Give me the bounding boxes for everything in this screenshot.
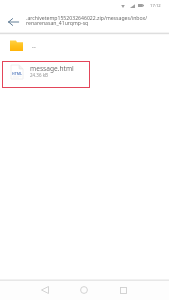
button[interactable]: HTML — [0, 58, 169, 90]
button[interactable]: Recent apps — [113, 280, 133, 300]
staticText: 17:12 — [150, 3, 161, 8]
staticText: .. — [32, 41, 36, 51]
staticText: HTML — [12, 71, 22, 76]
button[interactable]: Home — [74, 280, 94, 300]
button[interactable]: Back — [35, 280, 55, 300]
staticText: renarenasan_41urqmp-sq — [26, 19, 89, 26]
staticText: message.html — [30, 64, 74, 73]
button[interactable]: .. — [0, 34, 169, 56]
button[interactable]: Back — [3, 12, 23, 32]
staticText: .archivetemp1552032646022.zip/messages/i… — [26, 14, 148, 21]
staticText: 24.36 kB — [30, 72, 48, 78]
